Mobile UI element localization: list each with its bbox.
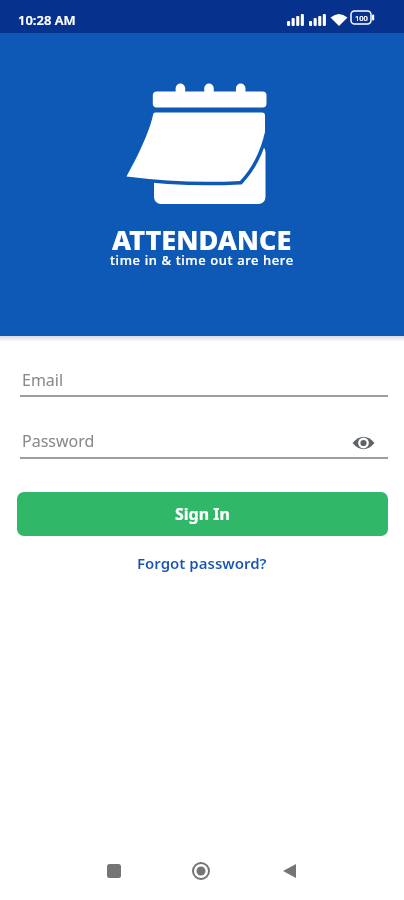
- button[interactable]: [183, 852, 221, 890]
- button[interactable]: Sign In: [17, 492, 388, 536]
- staticText: time in & time out are here: [110, 251, 294, 269]
- staticText: Password: [22, 430, 95, 452]
- staticText: Forgot password?: [137, 553, 267, 573]
- staticText: ATTENDANCE: [112, 221, 292, 258]
- button[interactable]: Forgot password?: [137, 553, 267, 573]
- staticText: 10:28 AM: [18, 11, 76, 29]
- button[interactable]: [95, 852, 133, 890]
- staticText: Sign In: [175, 503, 230, 525]
- staticText: Email: [22, 369, 64, 391]
- button[interactable]: [271, 852, 309, 890]
- staticText: 100: [355, 13, 368, 23]
- button[interactable]: [352, 433, 375, 453]
